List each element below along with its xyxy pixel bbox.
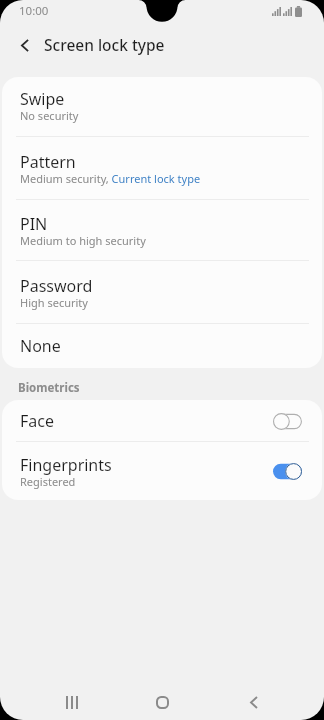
staticText: Password: [20, 275, 93, 297]
staticText: Screen lock type: [44, 34, 165, 55]
staticText: Fingerprints: [20, 454, 112, 476]
staticText: Registered: [20, 474, 76, 489]
button[interactable]: Back: [9, 30, 40, 60]
button[interactable]: None: [2, 324, 322, 368]
button[interactable]: Recents: [45, 666, 99, 720]
staticText: Medium security, Current lock type: [20, 171, 201, 186]
button[interactable]: PIN: [2, 200, 322, 261]
staticText: Pattern: [20, 151, 76, 173]
button[interactable]: Face: [2, 400, 322, 442]
staticText: No security: [20, 108, 79, 123]
staticText: Swipe: [20, 88, 65, 110]
staticText: PIN: [20, 213, 48, 235]
button[interactable]: Password: [2, 261, 322, 324]
button[interactable]: Fingerprints: [2, 442, 322, 500]
staticText: High security: [20, 295, 88, 310]
staticText: Face: [20, 410, 54, 432]
staticText: None: [20, 335, 61, 357]
button[interactable]: Swipe: [2, 77, 322, 137]
staticText: Biometrics: [18, 380, 80, 396]
button[interactable]: Pattern: [2, 137, 322, 200]
staticText: 10:00: [19, 3, 49, 19]
button[interactable]: Back: [227, 666, 281, 720]
button[interactable]: Home: [135, 666, 189, 720]
staticText: Medium to high security: [20, 233, 146, 248]
